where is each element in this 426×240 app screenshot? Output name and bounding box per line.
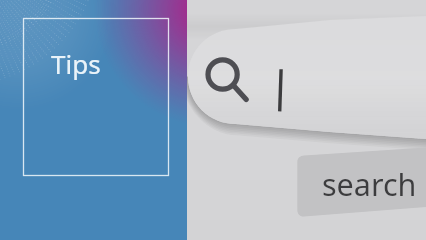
staticText: search: [322, 163, 417, 205]
staticText: Tips: [51, 46, 101, 81]
